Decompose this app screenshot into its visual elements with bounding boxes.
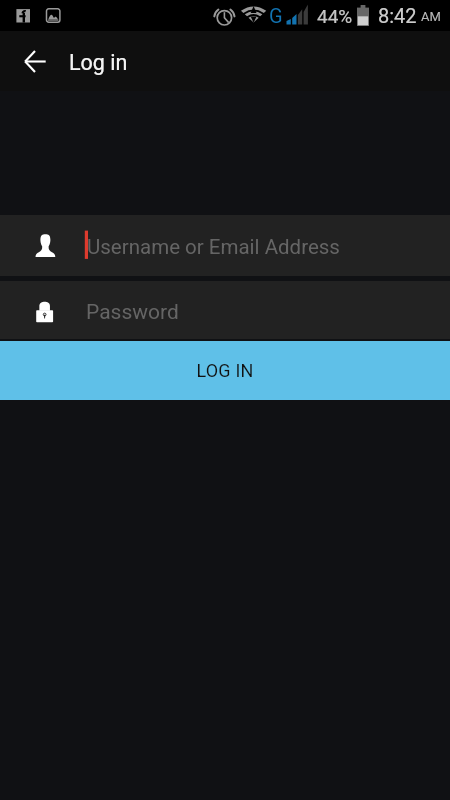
button[interactable]: Username or Email Address — [0, 215, 450, 276]
staticText: G — [269, 4, 283, 27]
staticText: LOG IN — [196, 360, 254, 381]
staticText: AM — [421, 9, 441, 24]
button[interactable]: Password — [0, 281, 450, 339]
staticText: 44% — [317, 5, 353, 27]
staticText: Username or Email Address — [87, 235, 340, 259]
staticText: Log in — [69, 50, 128, 75]
button[interactable]: LOG IN — [0, 341, 450, 400]
button[interactable]: Navigate up — [11, 37, 59, 85]
staticText: Password — [86, 300, 179, 325]
staticText: 8:42 — [378, 4, 417, 27]
